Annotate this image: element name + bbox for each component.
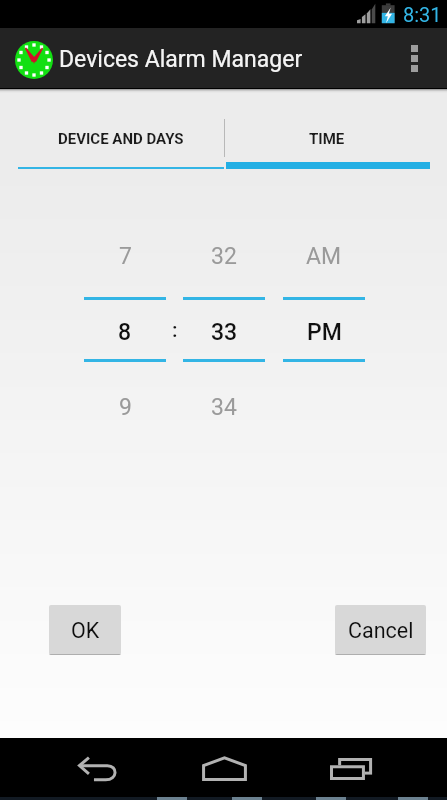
button[interactable]: Cancel xyxy=(335,605,426,655)
staticText: 8:31 xyxy=(403,3,442,26)
button[interactable]: Back xyxy=(57,738,141,800)
staticText: 7 xyxy=(119,243,132,270)
staticText: 8 xyxy=(118,319,132,346)
staticText: 32 xyxy=(211,243,237,270)
staticText: TIME xyxy=(309,130,345,148)
button[interactable]: Home xyxy=(182,738,266,800)
button[interactable]: More options xyxy=(382,28,447,88)
button[interactable]: OK xyxy=(49,605,121,655)
staticText: OK xyxy=(71,618,100,643)
staticText: 33 xyxy=(211,319,238,346)
staticText: PM xyxy=(307,319,342,346)
button[interactable]: TIME xyxy=(224,89,430,169)
staticText: Devices Alarm Manager xyxy=(59,46,303,73)
staticText: Cancel xyxy=(348,618,414,643)
staticText: DEVICE AND DAYS xyxy=(58,130,184,148)
staticText: 34 xyxy=(211,394,237,421)
staticText: : xyxy=(172,318,178,343)
button[interactable]: Recent apps xyxy=(308,738,392,800)
button[interactable]: DEVICE AND DAYS xyxy=(18,89,224,169)
staticText: 9 xyxy=(119,394,132,421)
staticText: AM xyxy=(306,243,342,270)
